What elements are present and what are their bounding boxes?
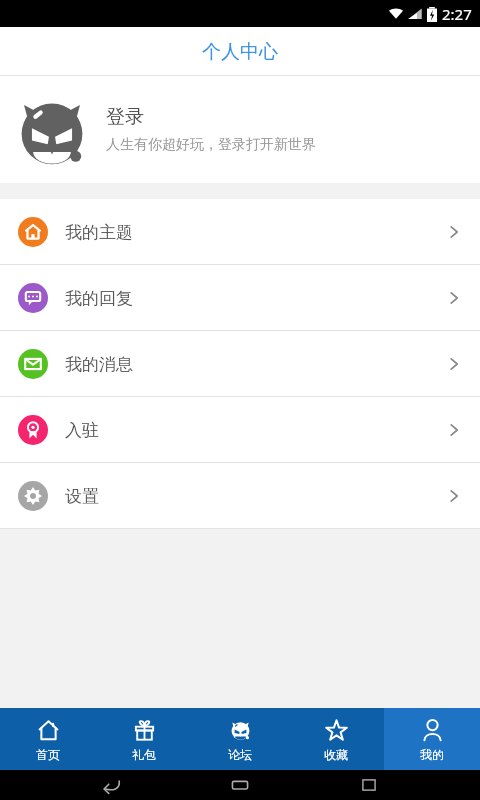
staticText: 收藏 xyxy=(324,747,348,762)
button[interactable]: 我的消息 xyxy=(0,331,480,397)
staticText: 设置 xyxy=(65,486,99,507)
button[interactable]: Back xyxy=(95,770,129,800)
staticText: 2:27 xyxy=(442,4,472,24)
staticText: 个人中心 xyxy=(202,40,278,64)
button[interactable]: 我的主题 xyxy=(0,199,480,265)
staticText: 首页 xyxy=(36,747,60,762)
button[interactable]: 首页 xyxy=(0,708,96,770)
button[interactable]: 收藏 xyxy=(288,708,384,770)
staticText: 人生有你超好玩，登录打开新世界 xyxy=(106,136,316,154)
staticText: 我的主题 xyxy=(65,222,133,243)
button[interactable]: Recent apps xyxy=(352,770,386,800)
button[interactable]: 登录 xyxy=(0,76,480,183)
staticText: 入驻 xyxy=(65,420,99,441)
button[interactable]: 我的 xyxy=(384,708,480,770)
staticText: 礼包 xyxy=(132,747,156,762)
button[interactable]: 论坛 xyxy=(192,708,288,770)
staticText: 论坛 xyxy=(228,747,252,762)
button[interactable]: 设置 xyxy=(0,463,480,529)
button[interactable]: 我的回复 xyxy=(0,265,480,331)
staticText: 我的消息 xyxy=(65,354,133,375)
staticText: 我的 xyxy=(420,747,444,762)
staticText: 登录 xyxy=(106,105,144,129)
button[interactable]: 入驻 xyxy=(0,397,480,463)
button[interactable]: Home xyxy=(223,770,257,800)
button[interactable]: 礼包 xyxy=(96,708,192,770)
staticText: 我的回复 xyxy=(65,288,133,309)
